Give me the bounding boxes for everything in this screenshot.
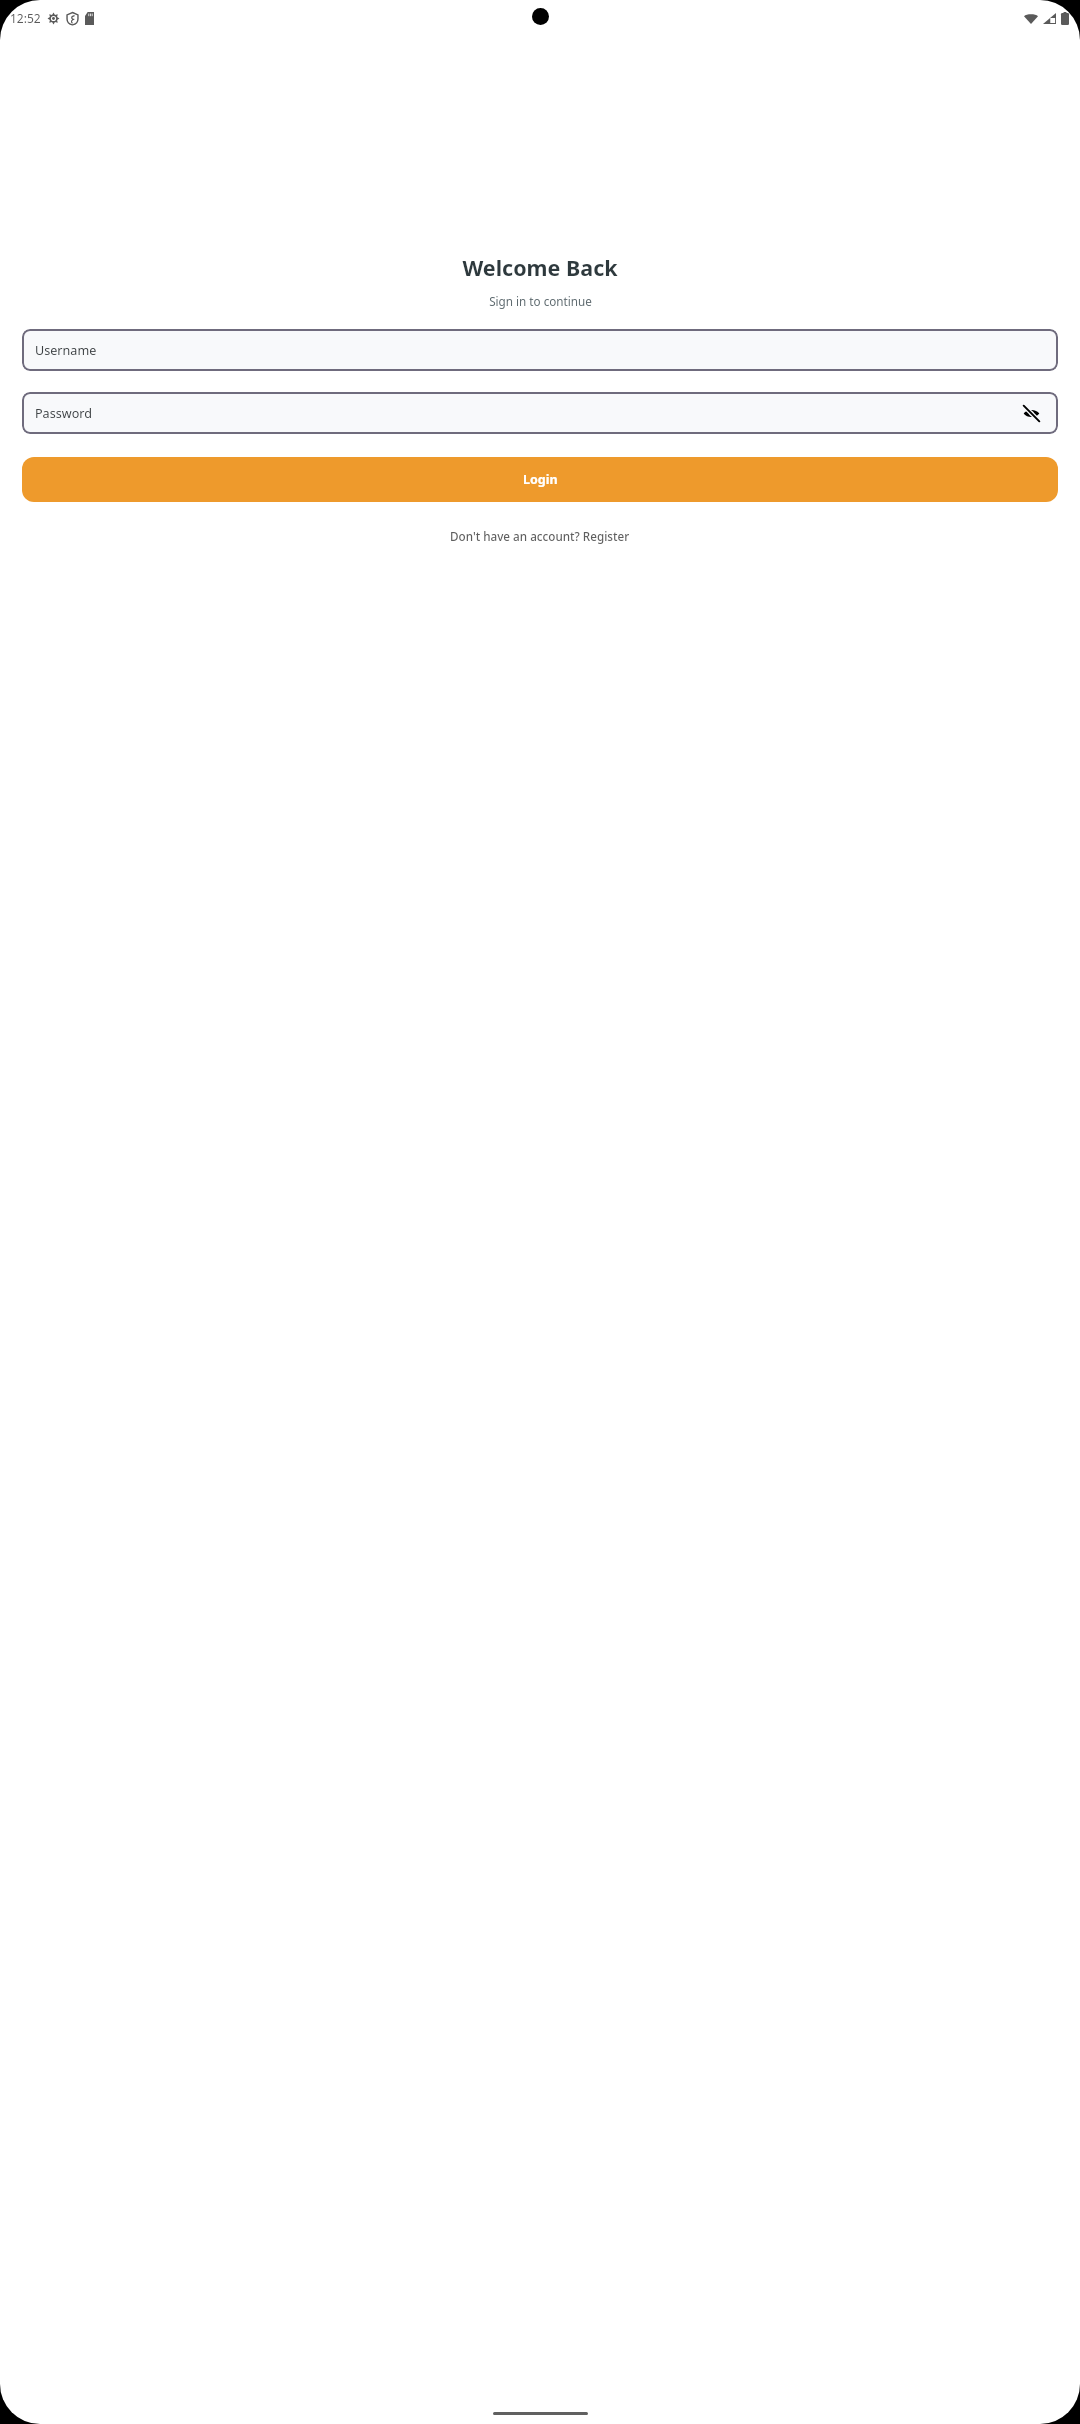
button[interactable]: Username xyxy=(22,329,1058,371)
staticText: Don't have an account? Register xyxy=(450,528,630,544)
button[interactable]: Don't have an account? Register xyxy=(444,524,636,548)
staticText: 12:52 xyxy=(10,10,41,26)
button[interactable]: Login xyxy=(22,457,1058,502)
button[interactable]: Password xyxy=(22,392,1058,434)
staticText: Sign in to continue xyxy=(489,293,592,309)
staticText: Password xyxy=(35,405,92,422)
staticText: Username xyxy=(35,342,97,359)
staticText: Login xyxy=(523,471,558,488)
button[interactable]: Show password xyxy=(1020,402,1042,424)
staticText: Welcome Back xyxy=(462,253,618,282)
